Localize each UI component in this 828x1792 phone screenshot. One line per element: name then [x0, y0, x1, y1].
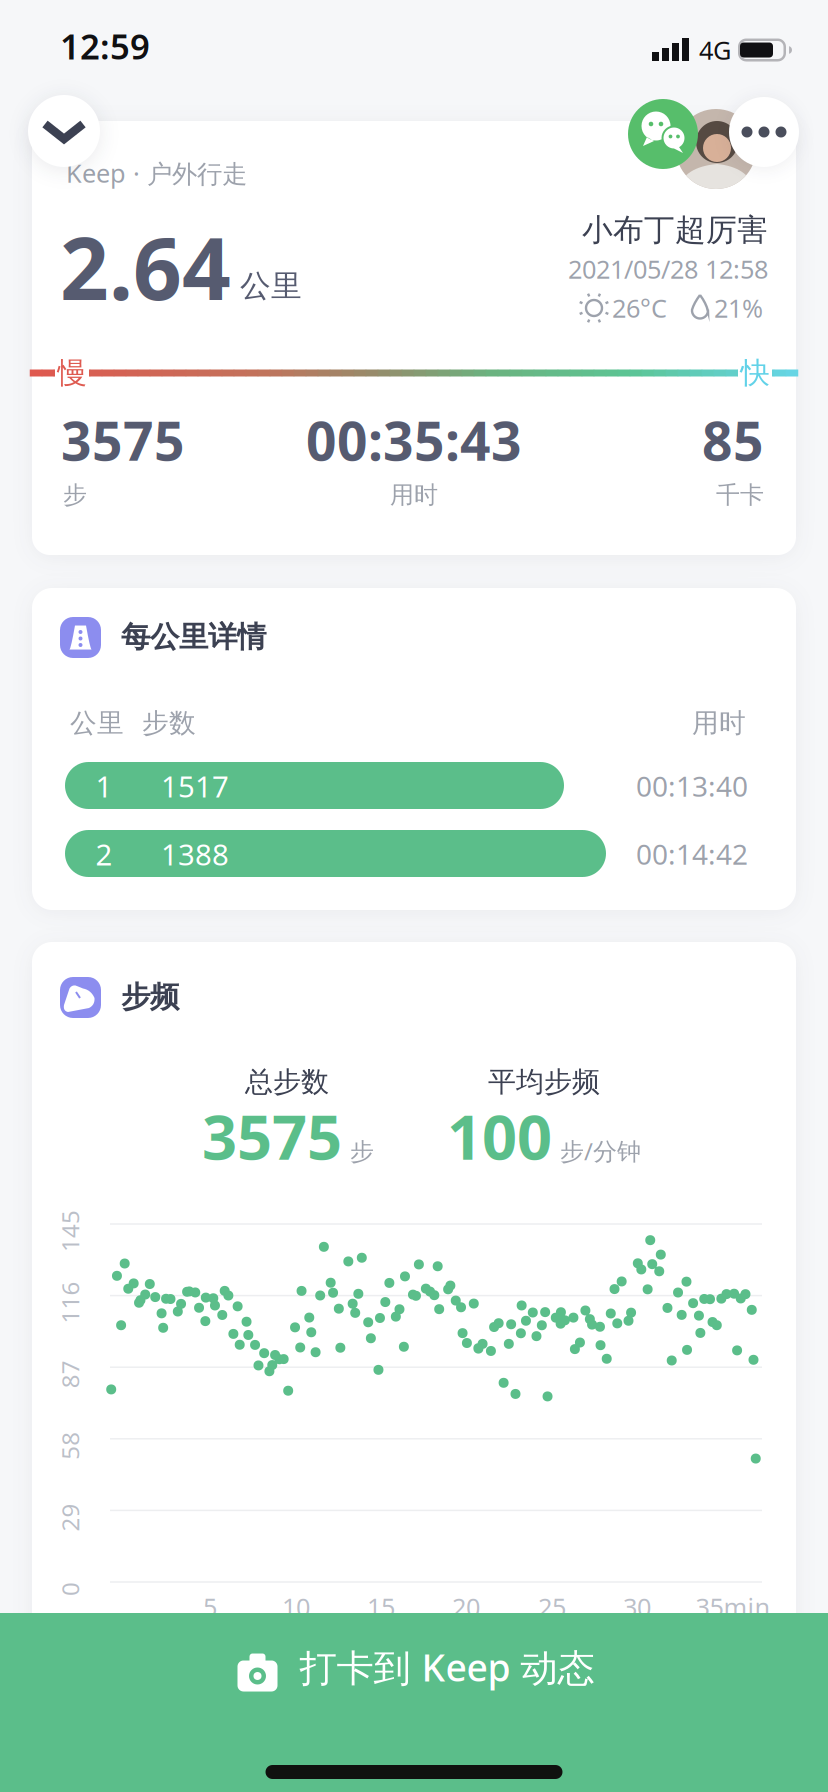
staticText: 每公里详情: [121, 619, 266, 655]
staticText: 26°C: [612, 291, 667, 325]
staticText: 2021/05/28 12:58: [568, 252, 768, 286]
staticText: 公里: [70, 707, 124, 739]
staticText: 100: [447, 1095, 552, 1177]
staticText: 2.64: [60, 210, 231, 324]
staticText: 打卡到 Keep 动态: [299, 1642, 594, 1692]
button[interactable]: 更多: [729, 97, 799, 167]
staticText: 3575: [202, 1095, 342, 1177]
staticText: 58: [56, 1430, 84, 1462]
staticText: 116: [49, 1287, 91, 1319]
staticText: 公里: [240, 267, 302, 305]
staticText: 步频: [121, 979, 179, 1015]
button[interactable]: 头像: [676, 109, 756, 189]
staticText: 00:14:42: [636, 835, 748, 873]
staticText: 千卡: [716, 480, 764, 510]
staticText: 12:59: [60, 23, 150, 69]
staticText: 快: [740, 355, 769, 391]
staticText: 35min: [695, 1590, 770, 1624]
button[interactable]: 第2公里 1388步: [65, 830, 606, 877]
staticText: 15: [367, 1590, 395, 1624]
staticText: 87: [56, 1358, 84, 1390]
staticText: 4G: [699, 33, 731, 67]
staticText: 用时: [692, 707, 746, 739]
staticText: 20: [452, 1590, 480, 1624]
staticText: 慢: [57, 355, 86, 391]
staticText: 0: [63, 1573, 77, 1605]
staticText: 用时: [390, 480, 438, 510]
staticText: 30: [623, 1590, 651, 1624]
staticText: 85: [702, 405, 764, 475]
staticText: 29: [56, 1501, 84, 1533]
staticText: 步: [350, 1137, 374, 1167]
staticText: 00:35:43: [306, 405, 522, 475]
staticText: 5: [203, 1590, 217, 1624]
staticText: 步: [63, 480, 87, 510]
staticText: 步/分钟: [560, 1135, 641, 1167]
button[interactable]: 打卡到 Keep 动态: [0, 1613, 828, 1792]
staticText: 1517: [161, 766, 229, 805]
button[interactable]: 收起: [28, 95, 100, 167]
staticText: 1388: [161, 834, 229, 873]
staticText: 145: [49, 1215, 91, 1247]
staticText: 10: [282, 1590, 310, 1624]
button[interactable]: 第1公里 1517步: [65, 762, 564, 809]
staticText: 1: [95, 766, 112, 805]
staticText: Keep · 户外行走: [66, 156, 247, 190]
staticText: 25: [538, 1590, 566, 1624]
button[interactable]: 分享到微信: [628, 99, 698, 169]
staticText: 3575: [61, 405, 185, 475]
staticText: 小布丁超厉害: [582, 211, 768, 249]
staticText: 步数: [142, 707, 196, 739]
staticText: 00:13:40: [636, 767, 748, 805]
staticText: 平均步频: [488, 1065, 600, 1099]
staticText: 总步数: [245, 1065, 329, 1099]
staticText: 21%: [714, 291, 763, 325]
staticText: 2: [95, 834, 112, 873]
